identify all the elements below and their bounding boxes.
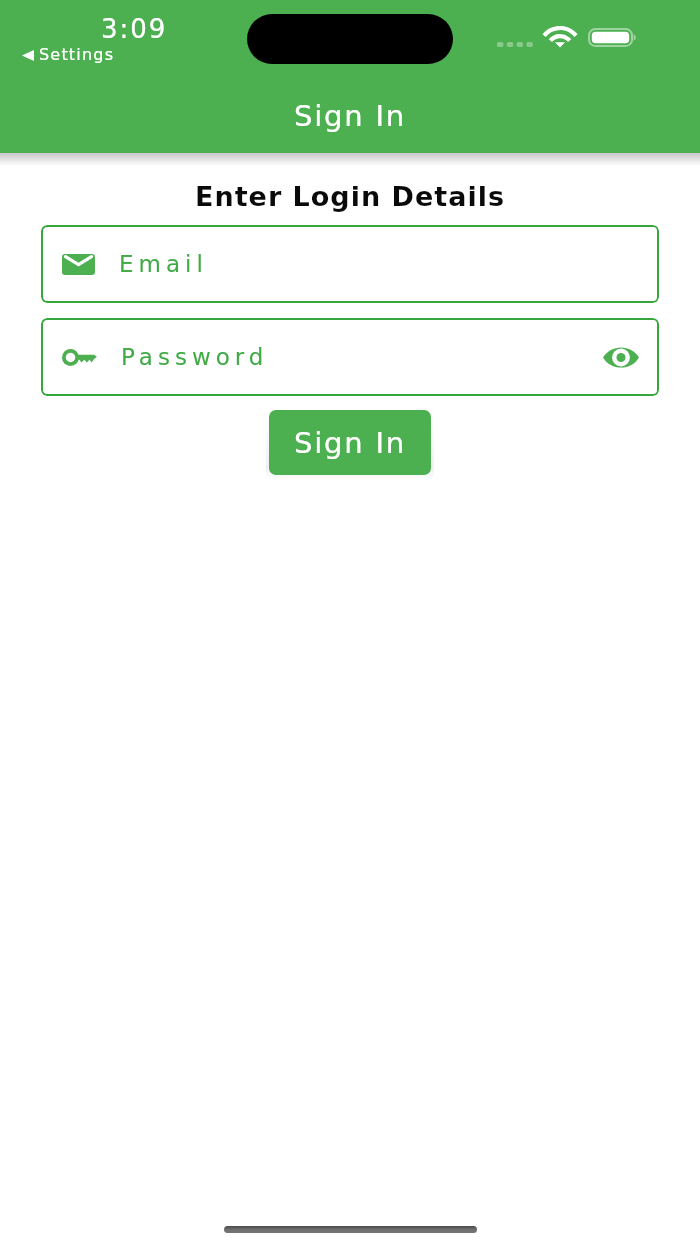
staticText: Password	[121, 344, 269, 371]
staticText: Sign In	[294, 426, 407, 460]
button[interactable]: Show password	[594, 330, 648, 384]
staticText: 3:09	[101, 14, 168, 44]
staticText: Enter Login Details	[0, 181, 700, 212]
button[interactable]: Sign In	[269, 410, 431, 475]
button[interactable]: Settings	[18, 42, 118, 68]
button[interactable]: Email	[41, 225, 659, 303]
staticText: Settings	[39, 45, 115, 64]
staticText: Sign In	[294, 99, 407, 133]
button[interactable]: Password	[41, 318, 659, 396]
staticText: Email	[119, 251, 208, 278]
